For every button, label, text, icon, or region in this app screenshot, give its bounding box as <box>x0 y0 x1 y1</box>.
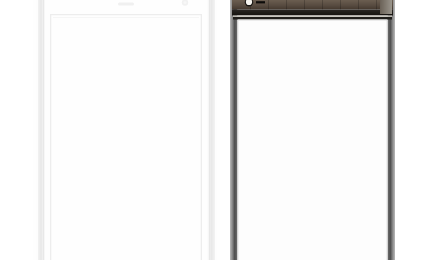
button[interactable]: Two replacement phone screen panels <box>0 0 430 260</box>
